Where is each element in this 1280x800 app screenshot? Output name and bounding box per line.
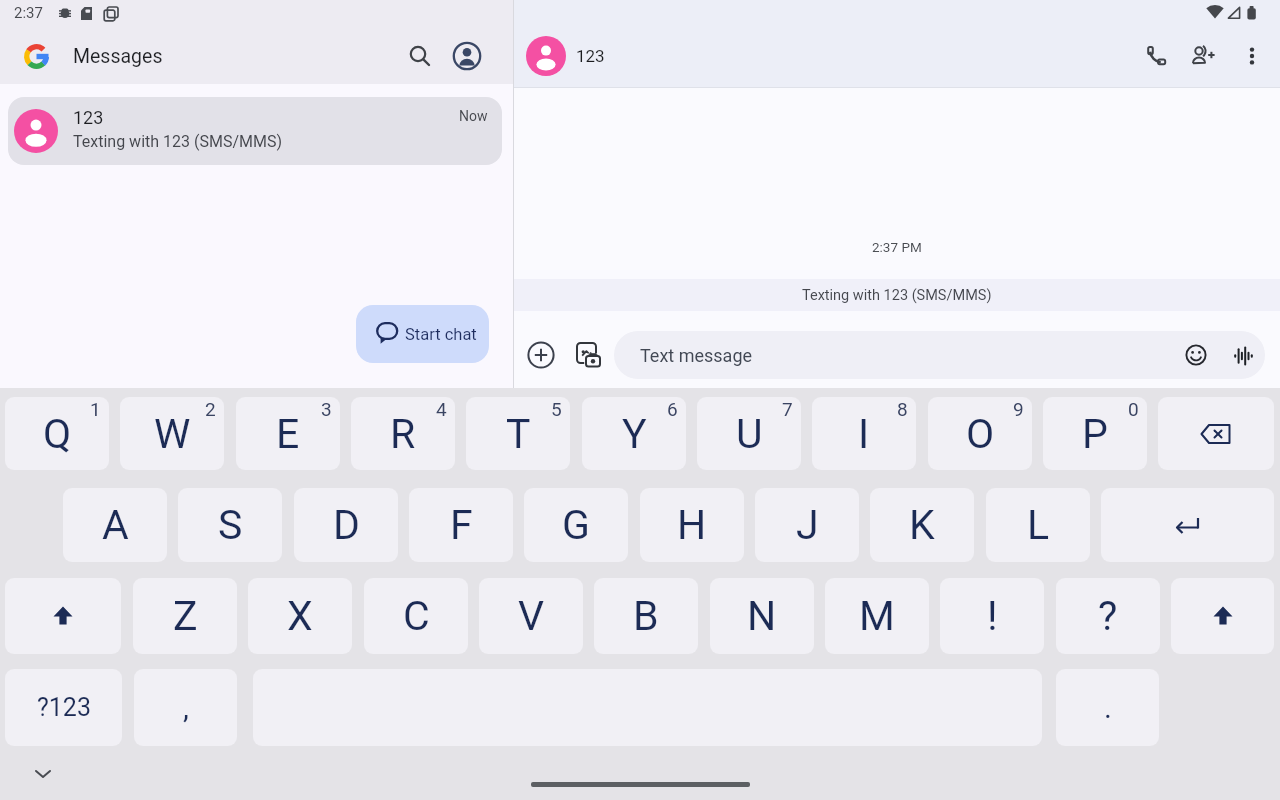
staticText: D bbox=[333, 501, 360, 549]
staticText: L bbox=[1027, 501, 1050, 549]
staticText: O bbox=[966, 410, 995, 458]
button[interactable] bbox=[409, 45, 431, 67]
button[interactable]: B bbox=[594, 578, 698, 654]
button[interactable]: C bbox=[364, 578, 468, 654]
staticText: F bbox=[450, 501, 473, 549]
staticText: 2:37 PM bbox=[872, 239, 922, 255]
button[interactable] bbox=[576, 342, 602, 368]
staticText: 1 bbox=[90, 398, 101, 420]
staticText: 123 bbox=[576, 46, 605, 66]
button[interactable]: F bbox=[409, 488, 513, 562]
staticText: , bbox=[183, 690, 189, 725]
button[interactable] bbox=[1185, 344, 1207, 366]
button[interactable]: . bbox=[1056, 669, 1159, 746]
staticText: A bbox=[102, 501, 129, 549]
staticText: T bbox=[506, 410, 531, 458]
button[interactable]: R bbox=[351, 397, 455, 470]
button[interactable] bbox=[1243, 47, 1261, 65]
button[interactable]: M bbox=[825, 578, 929, 654]
button[interactable]: G bbox=[524, 488, 628, 562]
button[interactable] bbox=[34, 768, 52, 780]
staticText: B bbox=[633, 592, 659, 640]
button[interactable]: H bbox=[640, 488, 744, 562]
staticText: ?123 bbox=[37, 693, 91, 722]
staticText: Z bbox=[173, 592, 198, 640]
staticText: 5 bbox=[551, 398, 562, 420]
button[interactable]: Y bbox=[582, 397, 686, 470]
button[interactable]: N bbox=[710, 578, 814, 654]
staticText: ! bbox=[987, 592, 998, 640]
staticText: I bbox=[858, 410, 870, 458]
button[interactable] bbox=[1158, 397, 1274, 470]
button[interactable]: S bbox=[178, 488, 282, 562]
button[interactable]: U bbox=[697, 397, 801, 470]
staticText: J bbox=[796, 501, 819, 549]
button[interactable]: E bbox=[236, 397, 340, 470]
button[interactable] bbox=[452, 41, 482, 71]
staticText: 4 bbox=[436, 398, 447, 420]
staticText: Text message bbox=[640, 345, 753, 366]
button[interactable] bbox=[1233, 345, 1255, 367]
staticText: 3 bbox=[321, 398, 332, 420]
button[interactable]: I bbox=[812, 397, 916, 470]
staticText: W bbox=[154, 410, 191, 458]
staticText: Texting with 123 (SMS/MMS) bbox=[802, 287, 992, 304]
staticText: M bbox=[859, 592, 895, 640]
staticText: Start chat bbox=[405, 325, 477, 344]
staticText: 2 bbox=[205, 398, 216, 420]
button[interactable] bbox=[1171, 578, 1274, 654]
staticText: G bbox=[562, 501, 590, 549]
staticText: U bbox=[736, 410, 763, 458]
button[interactable] bbox=[1101, 488, 1274, 562]
button[interactable]: ?123 bbox=[5, 669, 122, 746]
button[interactable]: Start chat bbox=[356, 305, 489, 363]
button[interactable] bbox=[527, 341, 555, 369]
button[interactable]: T bbox=[466, 397, 570, 470]
staticText: P bbox=[1082, 410, 1108, 458]
staticText: C bbox=[403, 592, 430, 640]
staticText: ? bbox=[1098, 592, 1118, 640]
button[interactable] bbox=[1145, 45, 1167, 67]
button[interactable]: Text message bbox=[614, 331, 1265, 379]
button[interactable]: L bbox=[986, 488, 1090, 562]
button[interactable] bbox=[1190, 44, 1216, 70]
button[interactable]: ! bbox=[940, 578, 1044, 654]
staticText: 6 bbox=[667, 398, 678, 420]
button[interactable]: P bbox=[1043, 397, 1147, 470]
button[interactable]: W bbox=[120, 397, 224, 470]
button[interactable] bbox=[531, 782, 750, 787]
staticText: N bbox=[747, 592, 777, 640]
staticText: V bbox=[518, 592, 545, 640]
staticText: 123 bbox=[73, 107, 104, 128]
staticText: Messages bbox=[73, 45, 163, 68]
staticText: Now bbox=[459, 108, 488, 124]
button[interactable]: 123 bbox=[8, 97, 502, 165]
staticText: K bbox=[909, 501, 935, 549]
button[interactable]: , bbox=[134, 669, 237, 746]
button[interactable]: Z bbox=[133, 578, 237, 654]
staticText: 0 bbox=[1128, 398, 1139, 420]
staticText: Texting with 123 (SMS/MMS) bbox=[73, 132, 283, 151]
staticText: Q bbox=[43, 410, 72, 458]
staticText: R bbox=[390, 410, 416, 458]
button[interactable]: D bbox=[294, 488, 398, 562]
button[interactable]: A bbox=[63, 488, 167, 562]
staticText: 7 bbox=[782, 398, 793, 420]
staticText: 8 bbox=[897, 398, 908, 420]
button[interactable]: V bbox=[479, 578, 583, 654]
button[interactable]: ? bbox=[1056, 578, 1160, 654]
button[interactable]: O bbox=[928, 397, 1032, 470]
staticText: 9 bbox=[1013, 398, 1024, 420]
staticText: X bbox=[287, 592, 313, 640]
staticText: S bbox=[218, 501, 243, 549]
staticText: 2:37 bbox=[14, 4, 43, 22]
button[interactable]: J bbox=[755, 488, 859, 562]
button[interactable] bbox=[5, 578, 121, 654]
staticText: E bbox=[276, 410, 300, 458]
button[interactable]: K bbox=[870, 488, 974, 562]
button[interactable]: Q bbox=[5, 397, 109, 470]
staticText: . bbox=[1104, 690, 1112, 725]
button[interactable]: X bbox=[248, 578, 352, 654]
staticText: Y bbox=[622, 410, 647, 458]
